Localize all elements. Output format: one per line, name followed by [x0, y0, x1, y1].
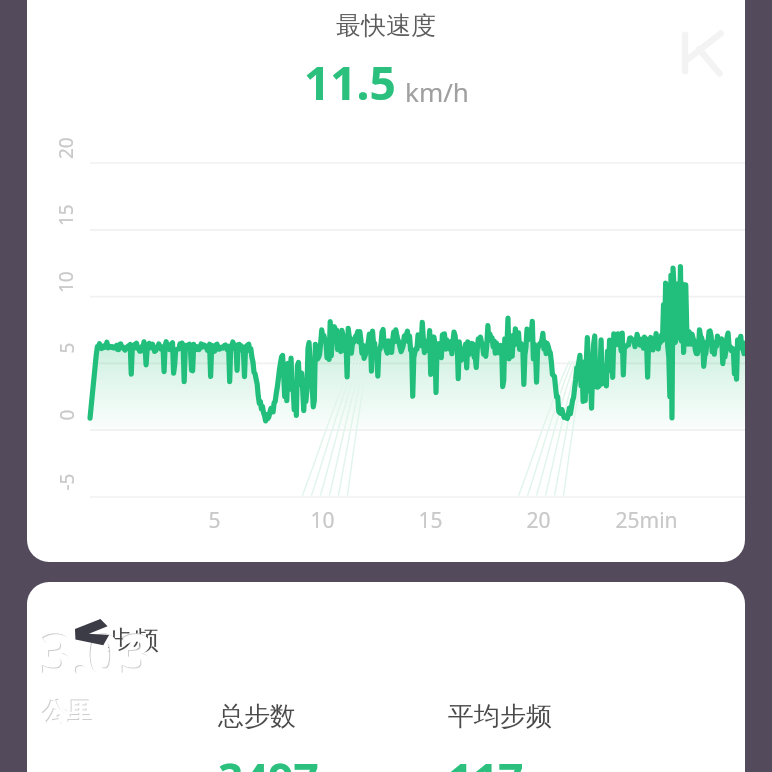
staticText: 0	[53, 409, 79, 420]
staticText: km/h	[405, 74, 469, 109]
staticText: 20	[526, 506, 551, 535]
staticText: 15	[418, 506, 443, 535]
staticText: 3.03	[40, 614, 152, 690]
staticText: -5	[53, 473, 79, 490]
button[interactable]: 平均步频	[448, 700, 607, 772]
staticText: 公里	[42, 696, 92, 727]
staticText: 5	[208, 506, 221, 535]
staticText: 平均步频	[448, 700, 552, 733]
button[interactable]: 最快速度	[27, 0, 745, 562]
staticText: 最快速度	[336, 10, 436, 41]
staticText: 10	[53, 271, 79, 293]
staticText: 3497	[218, 749, 319, 772]
button[interactable]: Keep logo	[671, 26, 725, 80]
staticText: 步频	[107, 624, 159, 657]
button[interactable]: 总步数	[218, 700, 349, 772]
staticText: 5	[53, 342, 79, 353]
staticText: 25min	[615, 506, 678, 535]
staticText: 117	[448, 749, 524, 772]
staticText: 15	[53, 204, 79, 226]
other: Running shoe	[74, 618, 122, 652]
staticText: 10	[310, 506, 335, 535]
staticText: 总步数	[218, 700, 296, 733]
staticText: 公里	[43, 697, 93, 728]
button[interactable]: 步频	[27, 582, 745, 772]
staticText: 20	[53, 137, 79, 159]
staticText: 3.03	[41, 615, 153, 691]
staticText: 11.5	[304, 51, 396, 114]
